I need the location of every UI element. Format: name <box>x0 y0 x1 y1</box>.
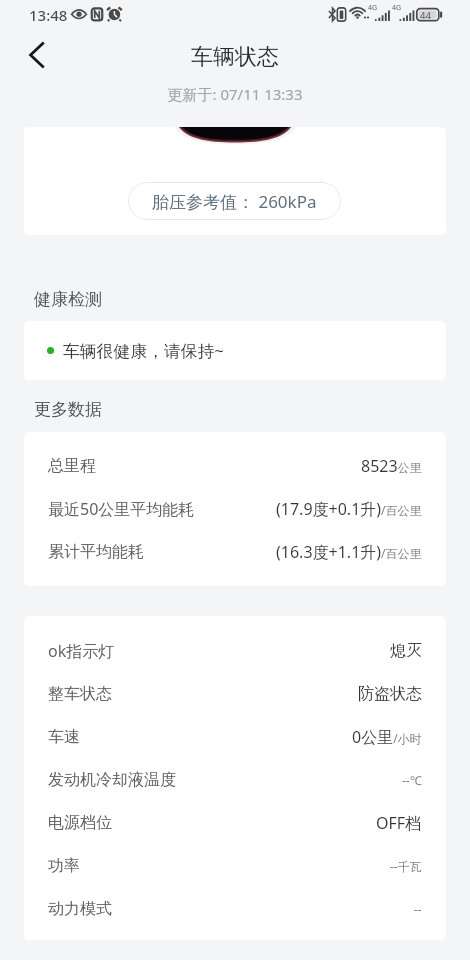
button[interactable]: 累计平均能耗 <box>24 530 446 573</box>
staticText: (17.9度+0.1升)/百公里 <box>276 498 422 520</box>
button[interactable]: 总里程 <box>24 444 446 487</box>
button[interactable]: 车速 <box>24 715 446 758</box>
staticText: 电源档位 <box>48 813 112 833</box>
button[interactable]: 功率 <box>24 844 446 887</box>
staticText: (16.3度+1.1升)/百公里 <box>276 541 422 563</box>
staticText: 总里程 <box>48 456 96 476</box>
staticText: 熄灭 <box>390 641 422 661</box>
button[interactable]: ok指示灯 <box>24 629 446 672</box>
button[interactable]: 整车状态 <box>24 672 446 715</box>
staticText: 13:48 <box>29 5 68 25</box>
staticText: ok指示灯 <box>48 640 115 662</box>
button[interactable]: 发动机冷却液温度 <box>24 758 446 801</box>
button[interactable]: Back <box>19 37 55 73</box>
staticText: 4G <box>368 3 378 13</box>
staticText: 44 <box>420 9 431 22</box>
staticText: --℃ <box>402 772 422 788</box>
staticText: -- <box>414 901 422 917</box>
staticText: 整车状态 <box>48 684 112 704</box>
staticText: 胎压参考值： 260kPa <box>152 190 317 213</box>
staticText: 防盗状态 <box>358 684 422 704</box>
staticText: 发动机冷却液温度 <box>48 770 176 790</box>
staticText: 0公里/小时 <box>352 726 422 748</box>
staticText: 健康检测 <box>34 289 102 310</box>
staticText: 累计平均能耗 <box>48 542 144 562</box>
button[interactable]: 胎压参考值： 260kPa <box>128 182 341 220</box>
staticText: 最近50公里平均能耗 <box>48 498 195 520</box>
staticText: --千瓦 <box>390 858 422 874</box>
staticText: 更多数据 <box>34 399 102 420</box>
button[interactable]: 电源档位 <box>24 801 446 844</box>
staticText: 4G <box>392 3 402 13</box>
button[interactable]: 最近50公里平均能耗 <box>24 487 446 530</box>
staticText: 车速 <box>48 727 80 747</box>
staticText: 功率 <box>48 856 80 876</box>
staticText: 车辆状态 <box>0 43 470 71</box>
button[interactable]: 车辆很健康，请保持~ <box>24 321 446 380</box>
staticText: 车辆很健康，请保持~ <box>63 339 224 362</box>
button[interactable]: 动力模式 <box>24 887 446 930</box>
staticText: 动力模式 <box>48 899 112 919</box>
staticText: 8523公里 <box>361 455 422 477</box>
staticText: 更新于: 07/11 13:33 <box>0 84 470 104</box>
staticText: OFF档 <box>376 812 422 834</box>
